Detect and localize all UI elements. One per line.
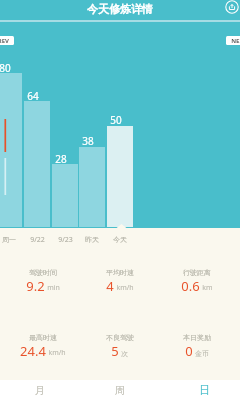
button[interactable]: NEXT [226, 36, 240, 45]
staticText: PREV [0, 37, 9, 45]
staticText: 平均时速 [106, 268, 134, 277]
staticText: 4 [106, 277, 114, 295]
staticText: 今天修炼详情 [87, 2, 153, 16]
staticText: 9.2 [26, 277, 45, 295]
button[interactable]: 最高时速 [5, 333, 81, 360]
staticText: 80 [0, 61, 11, 75]
staticText: 今天 [113, 235, 127, 244]
staticText: 周一 [2, 235, 16, 244]
button[interactable]: 本日奖励 [158, 333, 235, 360]
button[interactable]: 不良驾驶 [81, 333, 158, 360]
staticText: 28 [55, 152, 67, 166]
staticText: 0 [185, 342, 193, 360]
staticText: km/h [116, 283, 134, 293]
staticText: 9/23 [58, 235, 73, 245]
staticText: 日 [199, 383, 210, 397]
button[interactable]: 平均时速 [81, 268, 158, 295]
button[interactable]: 行驶距离 [158, 268, 235, 295]
staticText: 驾驶时间 [29, 268, 57, 277]
button[interactable]: PREV [0, 36, 14, 45]
staticText: 5 [111, 342, 119, 360]
staticText: 金币 [195, 349, 209, 358]
staticText: 周 [115, 384, 125, 397]
staticText: 次 [121, 349, 128, 358]
staticText: NEXT [231, 37, 240, 45]
staticText: 月 [35, 384, 45, 397]
button[interactable]: 月 [0, 380, 80, 400]
staticText: 本日奖励 [183, 333, 211, 342]
button[interactable]: 驾驶时间 [5, 268, 81, 295]
staticText: 不良驾驶 [106, 333, 134, 342]
staticText: 38 [82, 134, 94, 148]
button[interactable]: 日 [160, 380, 240, 400]
staticText: 50 [110, 113, 122, 127]
button[interactable]: 周 [80, 380, 160, 400]
staticText: km [202, 283, 213, 293]
staticText: 9/22 [30, 235, 45, 245]
staticText: min [47, 283, 60, 293]
staticText: 昨天 [85, 235, 99, 244]
staticText: 64 [27, 89, 39, 103]
staticText: 0.6 [181, 277, 200, 295]
staticText: 24.4 [20, 342, 46, 360]
staticText: km/h [48, 348, 66, 358]
staticText: 行驶距离 [183, 268, 211, 277]
button[interactable]: Share [225, 0, 239, 14]
staticText: 最高时速 [29, 333, 57, 342]
